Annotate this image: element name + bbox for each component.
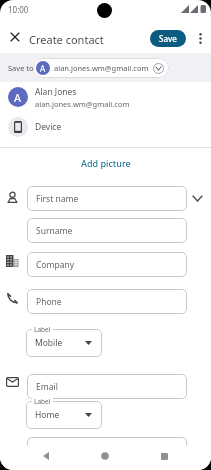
staticText: Phone: [36, 296, 62, 308]
button[interactable]: [7, 29, 22, 44]
staticText: A: [14, 90, 22, 105]
staticText: Email: [36, 381, 58, 393]
staticText: Label: [34, 325, 51, 334]
button[interactable]: Surname: [27, 218, 187, 243]
button[interactable]: [97, 448, 113, 464]
button[interactable]: Email: [27, 374, 187, 399]
button[interactable]: [156, 448, 172, 464]
button[interactable]: A: [33, 58, 169, 78]
staticText: Save to: [8, 63, 34, 73]
staticText: Home: [35, 409, 60, 421]
staticText: 10:00: [8, 4, 29, 15]
staticText: Add picture: [81, 157, 131, 169]
button[interactable]: [38, 448, 54, 464]
staticText: Label: [34, 397, 51, 406]
staticText: Company: [36, 259, 75, 271]
button[interactable]: Phone: [27, 289, 187, 314]
button[interactable]: Company: [27, 252, 187, 277]
button[interactable]: [189, 190, 205, 206]
button[interactable]: [192, 30, 208, 46]
button[interactable]: Save: [150, 30, 186, 47]
staticText: Device: [35, 121, 62, 133]
button[interactable]: Mobile: [26, 329, 102, 357]
staticText: Create contact: [29, 32, 104, 47]
staticText: Save: [159, 33, 177, 44]
button[interactable]: A: [0, 82, 211, 112]
staticText: alan.jones.wm@gmail.com: [35, 99, 130, 109]
button[interactable]: Add picture: [0, 153, 211, 173]
button[interactable]: Home: [26, 401, 102, 429]
staticText: Surname: [36, 225, 73, 237]
staticText: First name: [36, 193, 79, 205]
staticText: Alan Jones: [35, 86, 77, 98]
staticText: alan.jones.wm@gmail.com: [54, 63, 149, 73]
staticText: A: [40, 63, 46, 74]
staticText: Mobile: [35, 337, 63, 349]
button[interactable]: First name: [27, 186, 187, 211]
button[interactable]: Device: [0, 112, 211, 142]
